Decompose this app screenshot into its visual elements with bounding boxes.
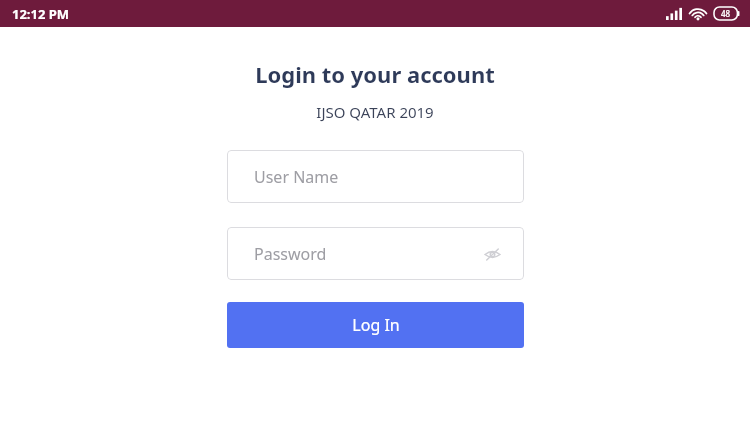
staticText: Log In [352, 314, 400, 336]
staticText: Password [254, 243, 327, 265]
staticText: Login to your account [255, 59, 495, 89]
staticText: IJSO QATAR 2019 [316, 102, 434, 122]
button[interactable]: Show password [482, 244, 502, 264]
staticText: 12:12 PM [12, 5, 70, 23]
staticText: User Name [254, 166, 339, 188]
button[interactable]: Log In [227, 302, 524, 348]
staticText: 48 [721, 8, 731, 19]
button[interactable]: User Name [227, 150, 524, 203]
button[interactable]: Password [227, 227, 524, 280]
